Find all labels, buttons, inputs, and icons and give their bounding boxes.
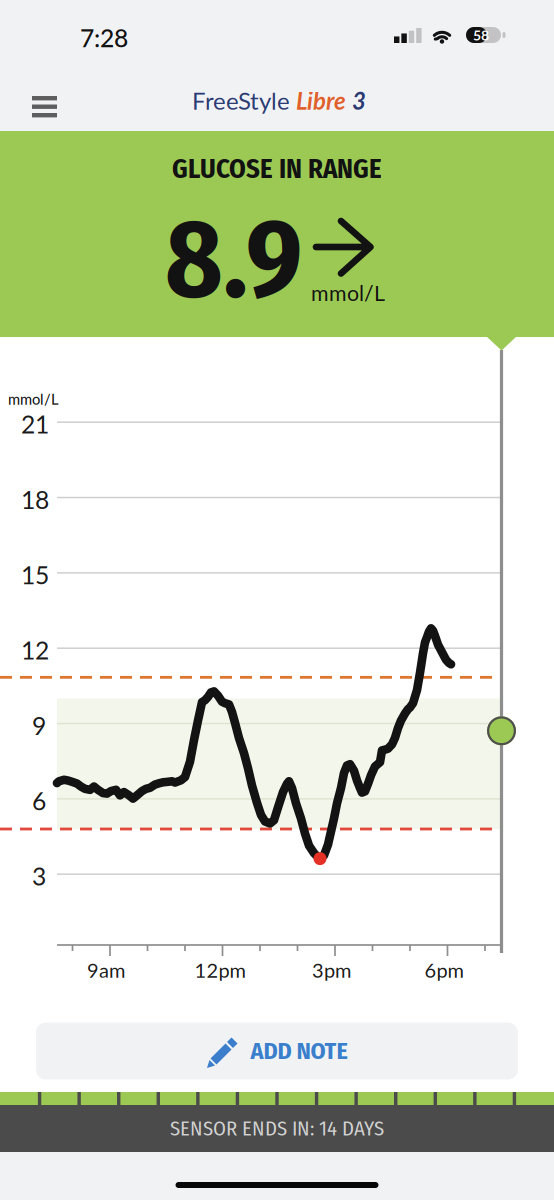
staticText: 6pm: [424, 958, 463, 982]
staticText: 21: [21, 409, 49, 439]
staticText: Libre: [296, 86, 346, 115]
staticText: 3: [32, 861, 46, 891]
staticText: 12pm: [194, 958, 245, 982]
staticText: 7:28: [80, 23, 128, 53]
staticText: 8.9: [165, 194, 303, 325]
staticText: 12: [21, 635, 49, 665]
staticText: FreeStyle: [192, 86, 290, 115]
staticText: 9: [32, 710, 46, 740]
button[interactable]: Menu: [0, 70, 89, 131]
staticText: 9am: [87, 958, 125, 982]
staticText: ADD NOTE: [250, 1037, 347, 1065]
staticText: SENSOR ENDS IN: 14 DAYS: [170, 1116, 384, 1141]
staticText: GLUCOSE IN RANGE: [172, 153, 382, 185]
staticText: 58: [473, 27, 489, 43]
staticText: 3: [352, 86, 366, 115]
button[interactable]: ADD NOTE: [36, 1022, 518, 1079]
staticText: mmol/L: [311, 280, 385, 306]
staticText: 18: [21, 484, 49, 514]
staticText: 3pm: [312, 958, 351, 982]
staticText: 6: [32, 786, 46, 815]
staticText: mmol/L: [8, 390, 59, 408]
staticText: 15: [21, 560, 49, 589]
